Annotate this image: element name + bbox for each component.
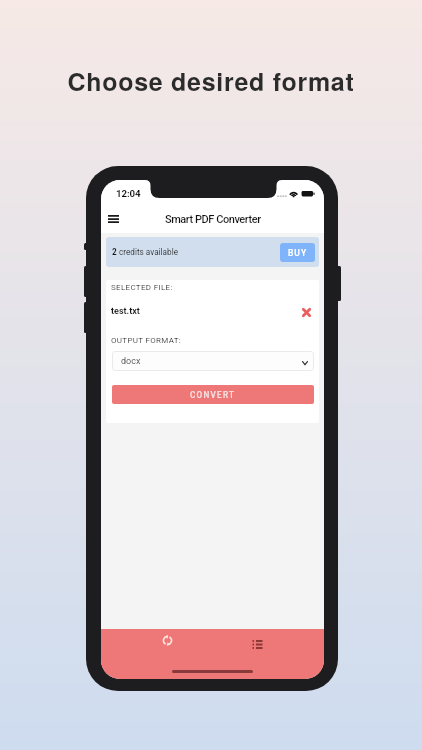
staticText: Smart PDF Converter [165, 213, 261, 226]
staticText: SELECTED FILE: [111, 283, 173, 292]
button[interactable]: Convert [152, 625, 182, 655]
button[interactable]: docx [112, 351, 314, 371]
staticText: BUY [288, 248, 308, 258]
button[interactable]: CONVERT [112, 385, 314, 404]
button[interactable]: Open menu [102, 208, 124, 230]
staticText: OUTPUT FORMAT: [111, 336, 182, 345]
staticText: CONVERT [190, 390, 236, 400]
staticText: test.txt [111, 306, 140, 317]
button[interactable]: BUY [280, 243, 315, 262]
button[interactable]: 2 [106, 237, 319, 267]
staticText: docx [121, 356, 141, 367]
staticText: 2 [112, 247, 117, 257]
staticText: 12:04 [116, 188, 141, 199]
button[interactable]: History [242, 629, 272, 659]
staticText: credits available [119, 247, 178, 257]
button[interactable]: Remove selected file [297, 303, 315, 321]
staticText: Choose desired format [0, 63, 422, 99]
